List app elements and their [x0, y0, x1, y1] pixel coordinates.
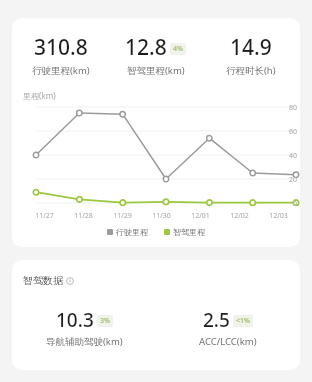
- staticText: 2.5: [203, 307, 230, 333]
- staticText: 4%: [173, 44, 183, 54]
- staticText: 行驶里程: [116, 227, 148, 237]
- staticText: 行程时长(h): [226, 64, 276, 77]
- staticText: 40: [289, 151, 298, 159]
- button[interactable]: 12.8: [108, 33, 203, 77]
- staticText: 14.9: [230, 33, 272, 62]
- button[interactable]: 行驶里程: [105, 225, 150, 239]
- other: Info: [66, 277, 74, 285]
- button[interactable]: 智驾数据: [23, 274, 74, 287]
- staticText: 导航辅助驾驶(km): [46, 335, 123, 348]
- staticText: ACC/LCC(km): [199, 335, 257, 348]
- staticText: 11/29: [113, 211, 132, 221]
- staticText: 11/27: [35, 211, 54, 221]
- staticText: 60: [289, 127, 298, 135]
- staticText: 310.8: [34, 33, 88, 62]
- staticText: 智驾里程(km): [127, 64, 185, 77]
- staticText: 10.3: [56, 307, 94, 333]
- staticText: 3%: [100, 316, 110, 326]
- button[interactable]: 智驾里程: [162, 225, 207, 239]
- staticText: 20: [289, 175, 298, 183]
- button[interactable]: 10.3: [12, 307, 156, 348]
- staticText: 12/03: [269, 211, 288, 221]
- staticText: 12/01: [191, 211, 210, 221]
- button[interactable]: 310.8: [14, 33, 108, 77]
- staticText: 智驾数据: [23, 274, 63, 287]
- staticText: 80: [289, 103, 298, 111]
- staticText: 智驾里程: [173, 227, 205, 237]
- button[interactable]: 14.9: [203, 33, 298, 77]
- staticText: 0: [293, 199, 298, 207]
- staticText: 11/28: [74, 211, 93, 221]
- button[interactable]: 2.5: [156, 307, 300, 348]
- staticText: <1%: [236, 316, 250, 326]
- staticText: 12/02: [230, 211, 249, 221]
- staticText: 行驶里程(km): [32, 64, 90, 77]
- staticText: 12.8: [125, 33, 167, 62]
- staticText: 11/30: [152, 211, 171, 221]
- staticText: 里程(km): [23, 90, 56, 101]
